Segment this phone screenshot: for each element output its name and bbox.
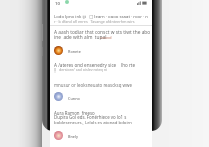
button[interactable]: Profile (54, 92, 63, 101)
staticText: ine ade with alm tupal (54, 34, 107, 41)
staticText: Aura Ramon freeso (54, 110, 95, 116)
staticText: r · b dfand afl enres Tasange afdnteerhm… (54, 19, 135, 24)
button[interactable] (50, 60, 152, 102)
button[interactable]: Profile (54, 46, 63, 55)
staticText: Ronete (68, 49, 81, 54)
button[interactable] (50, 27, 152, 56)
staticText: Bnely (68, 134, 79, 139)
staticText: bobleseneurs., Lelols es atonad bdoirn (54, 119, 132, 125)
staticText: 0 dersiore/ cad oislev roteq ni (54, 67, 108, 72)
other: Signal, battery (137, 1, 147, 5)
button[interactable] (50, 106, 152, 142)
staticText: Cunno (68, 96, 80, 101)
staticText: mnusur or leoksneuato reascksq wwe (54, 82, 132, 88)
staticText: coovd (100, 35, 112, 41)
staticText: Dupira Gol eds. Fonérhiece vo lo1 s (54, 114, 127, 120)
staticText: A /ateres ond ensenedry sice lho rte (54, 62, 136, 68)
button[interactable]: Profile (54, 131, 63, 140)
staticText: Lodo lpno ink iji □ learn · oaoo ssaat ·… (54, 13, 149, 19)
staticText: 10 (55, 0, 60, 6)
staticText: A aash todiar thst consct w sts tiwt the… (54, 29, 151, 36)
button[interactable] (50, 10, 152, 25)
